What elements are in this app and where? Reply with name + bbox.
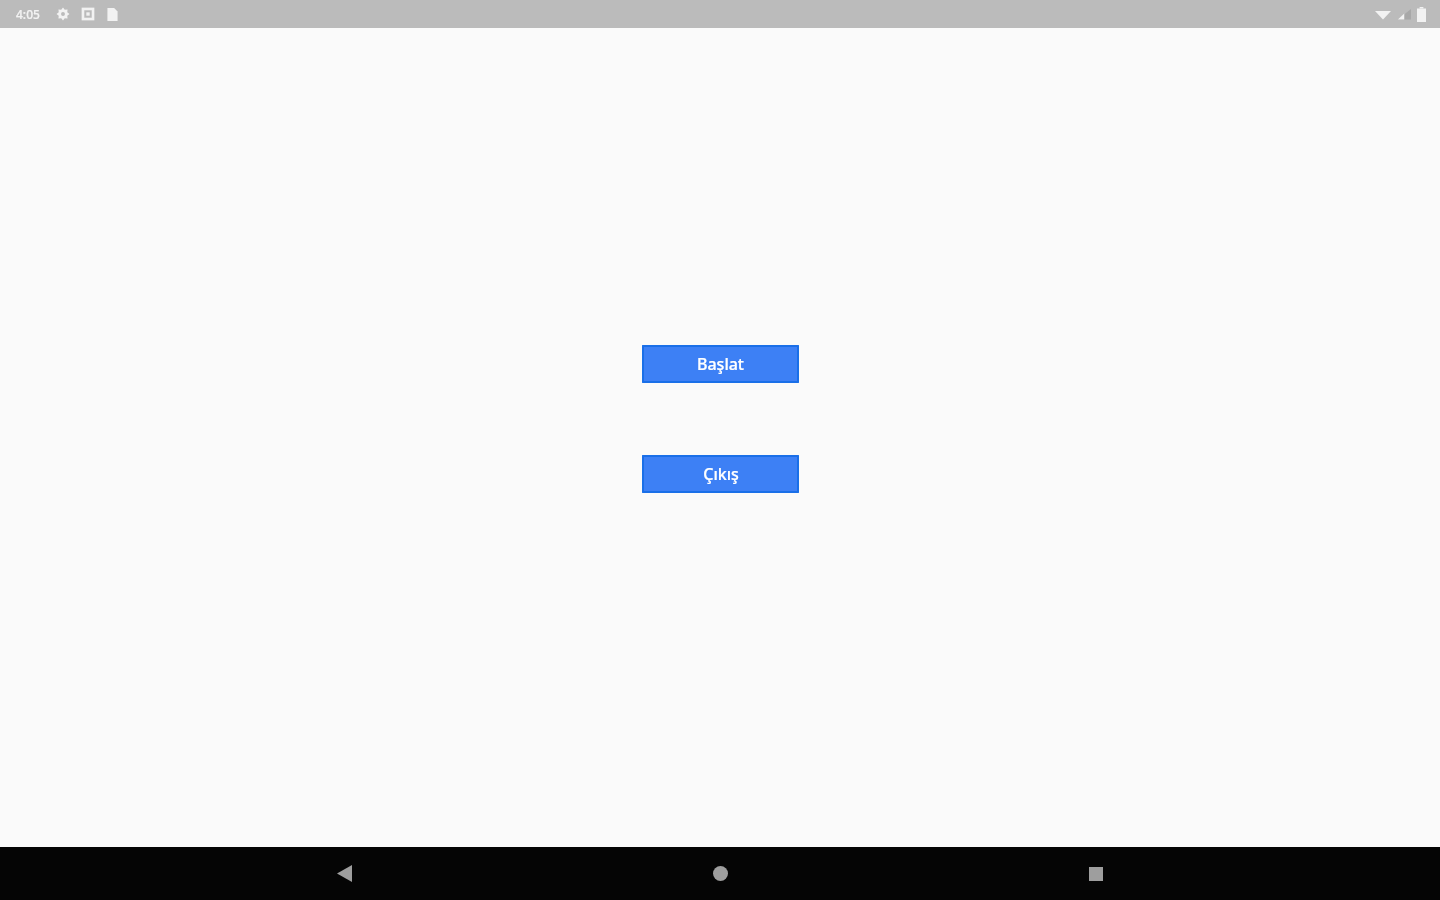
- staticText: Çıkış: [703, 463, 739, 485]
- button[interactable]: Home: [688, 847, 752, 900]
- button[interactable]: Başlat: [642, 345, 799, 383]
- staticText: 4:05: [16, 6, 40, 22]
- button[interactable]: Recent apps: [1064, 847, 1128, 900]
- button[interactable]: Çıkış: [642, 455, 799, 493]
- button[interactable]: Back: [312, 847, 376, 900]
- staticText: Başlat: [697, 353, 744, 375]
